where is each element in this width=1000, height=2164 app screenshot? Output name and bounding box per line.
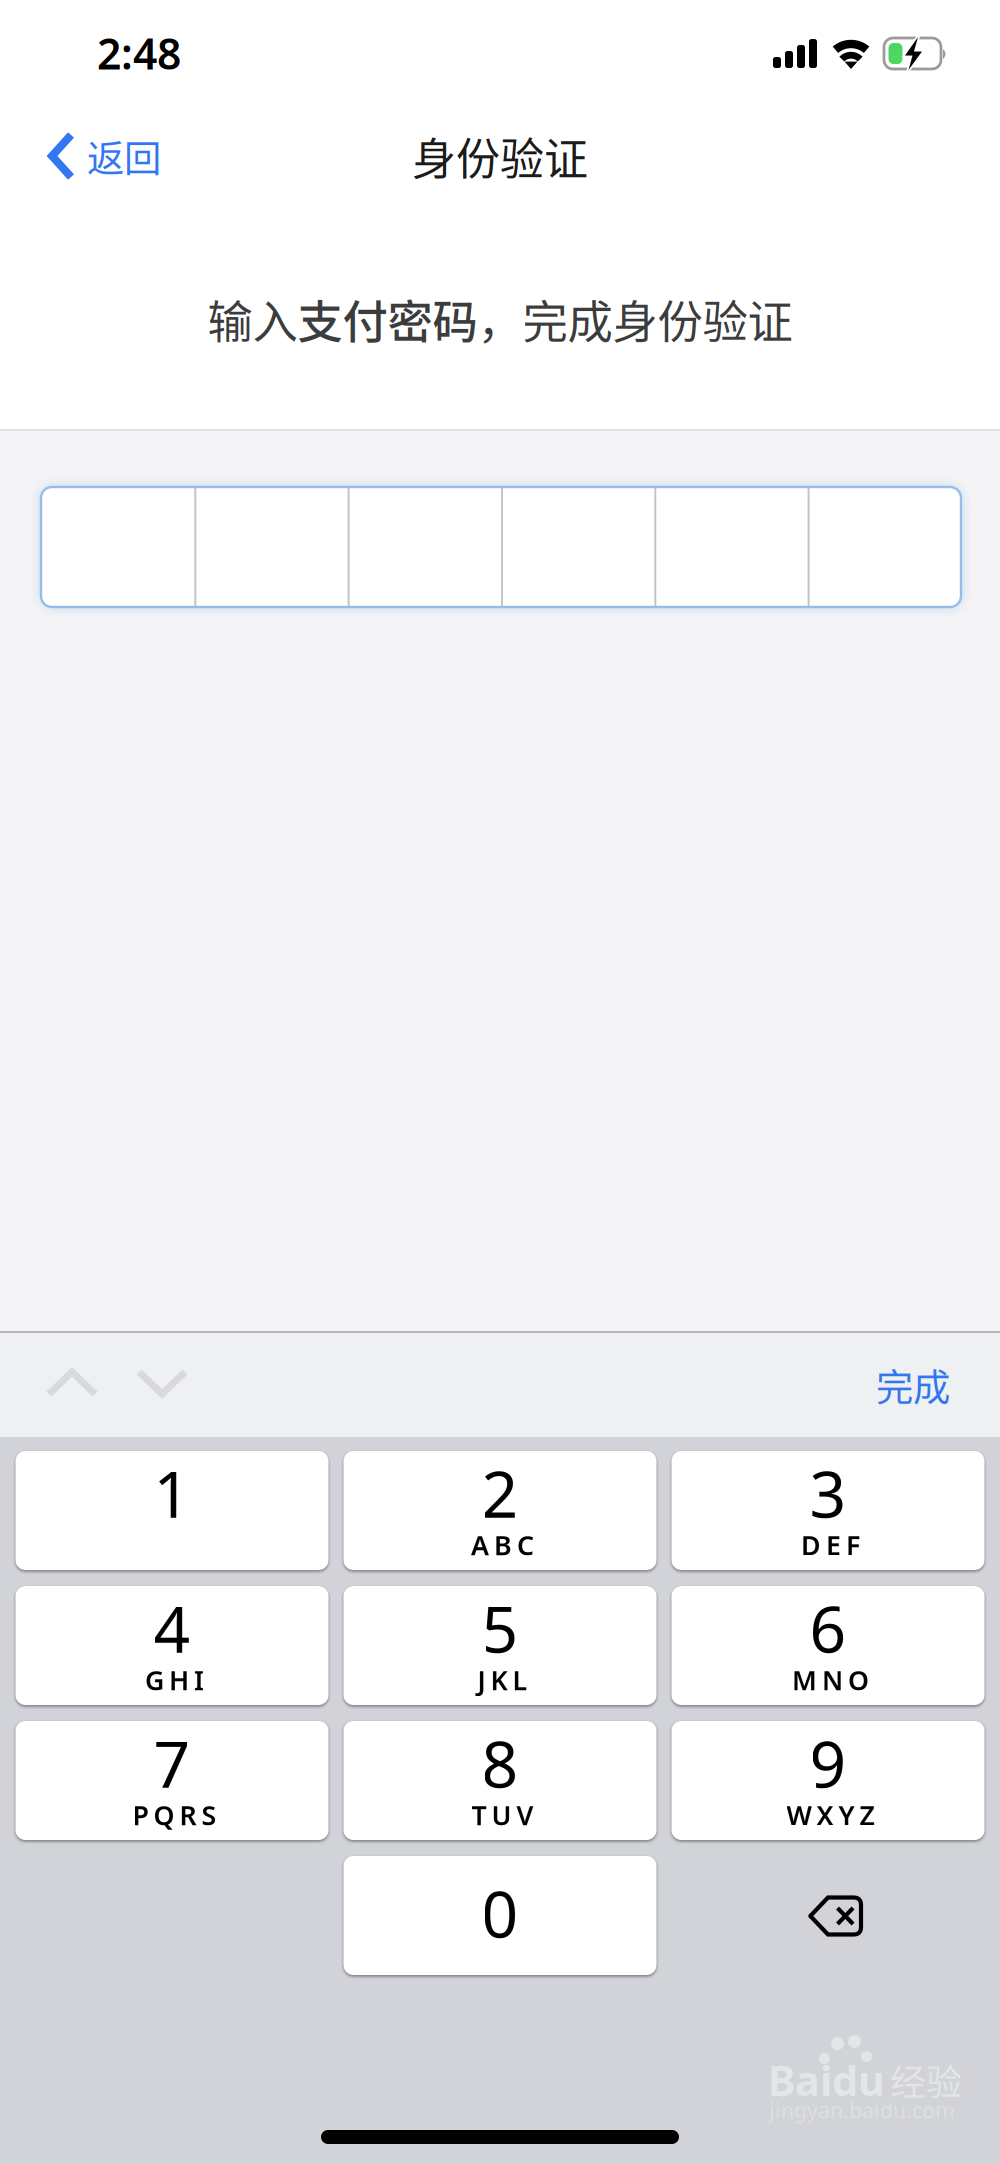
button[interactable]: 4 [15, 1586, 328, 1705]
staticText: 身份验证 [412, 124, 588, 188]
staticText: MNO [792, 1662, 869, 1698]
button[interactable]: 5 [343, 1586, 656, 1705]
staticText: 返回 [87, 129, 161, 183]
staticText: 8 [481, 1720, 518, 1805]
staticText: ，完成身份验证 [477, 286, 792, 352]
staticText: 5 [481, 1585, 518, 1670]
staticText: DEF [801, 1527, 860, 1563]
staticText: 9 [809, 1720, 846, 1805]
button[interactable]: 6 [671, 1586, 984, 1705]
button[interactable]: 9 [671, 1721, 984, 1840]
button[interactable]: Previous field [26, 1333, 116, 1437]
staticText: 2:48 [97, 25, 181, 81]
staticText: PQRS [132, 1797, 216, 1833]
staticText: 经验 [890, 2054, 962, 2106]
button[interactable]: 2 [343, 1451, 656, 1570]
staticText: 支付密码 [297, 286, 477, 352]
staticText: 1 [153, 1450, 190, 1535]
button[interactable]: 3 [671, 1451, 984, 1570]
button[interactable]: 返回 [0, 108, 185, 204]
staticText: JKL [477, 1662, 527, 1698]
button[interactable]: 7 [15, 1721, 328, 1840]
staticText: GHI [145, 1662, 204, 1698]
button[interactable]: 完成 [826, 1333, 1000, 1437]
button[interactable]: 1 [15, 1451, 328, 1570]
button[interactable]: Next field [116, 1333, 206, 1437]
staticText: WXYZ [786, 1797, 874, 1833]
staticText: 3 [809, 1450, 846, 1535]
button[interactable]: Delete [671, 1856, 984, 1975]
staticText: 完成 [876, 1358, 950, 1412]
staticText: Baidu [768, 2053, 885, 2107]
button[interactable]: 0 [343, 1856, 656, 1975]
staticText: TUV [471, 1797, 533, 1833]
staticText: 7 [153, 1720, 190, 1805]
staticText: 输入 [207, 286, 297, 352]
staticText: 0 [481, 1870, 518, 1955]
staticText: ABC [471, 1527, 534, 1563]
staticText: 6 [809, 1585, 846, 1670]
button[interactable]: 8 [343, 1721, 656, 1840]
staticText: 2 [481, 1450, 518, 1535]
staticText: 4 [153, 1585, 190, 1670]
staticText: jingyan.baidu.com [769, 2096, 955, 2124]
